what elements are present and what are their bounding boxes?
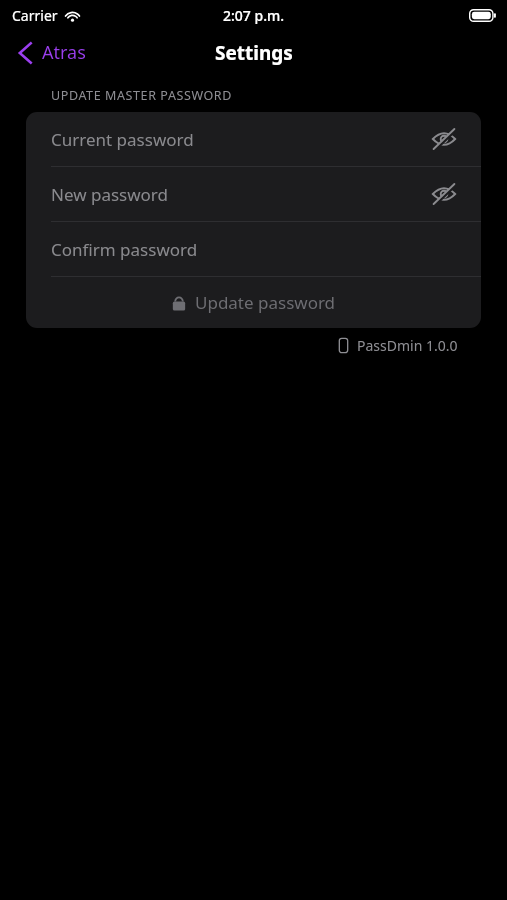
staticText: Confirm password <box>51 238 198 261</box>
staticText: PassDmin 1.0.0 <box>357 336 458 355</box>
staticText: Carrier <box>12 6 58 25</box>
staticText: Atras <box>42 40 86 65</box>
button[interactable]: Current password <box>26 112 481 166</box>
staticText: 2:07 p.m. <box>223 6 285 25</box>
button[interactable]: Show password <box>427 125 461 153</box>
staticText: New password <box>51 183 169 206</box>
staticText: Current password <box>51 128 194 151</box>
staticText: Settings <box>215 40 293 66</box>
button[interactable]: New password <box>26 167 481 221</box>
button[interactable]: Confirm password <box>26 222 481 276</box>
staticText: UPDATE MASTER PASSWORD <box>51 87 232 104</box>
button[interactable]: Update password <box>26 277 481 328</box>
button[interactable]: Atras <box>0 34 98 71</box>
staticText: Update password <box>195 291 336 314</box>
button[interactable]: Show password <box>427 180 461 208</box>
